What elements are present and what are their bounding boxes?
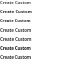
staticText: Create Custom: [0, 27, 32, 33]
staticText: Create Custom: [0, 0, 31, 6]
staticText: Create Custom: [0, 36, 32, 42]
staticText: Create Custom: [0, 54, 31, 61]
staticText: Create Custom: [0, 45, 31, 51]
staticText: Create Custom: [0, 18, 31, 23]
staticText: Create Custom: [0, 9, 32, 15]
